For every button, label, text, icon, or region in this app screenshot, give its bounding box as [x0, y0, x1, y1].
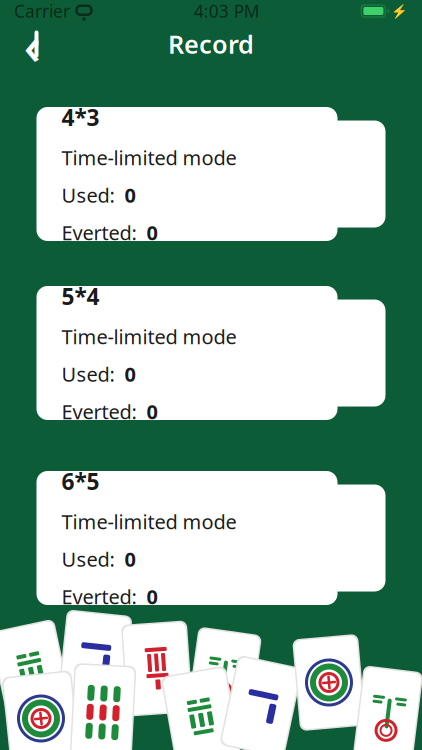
- staticText: Used:: [61, 361, 119, 387]
- staticText: Everted:: [61, 398, 141, 425]
- staticText: ⚡: [391, 3, 408, 19]
- staticText: Used:: [61, 182, 119, 208]
- staticText: 0: [141, 398, 157, 425]
- staticText: 0: [141, 583, 157, 610]
- button[interactable]: 4*3: [36, 107, 385, 241]
- staticText: Everted:: [61, 583, 141, 610]
- staticText: Time-limited mode: [61, 323, 236, 350]
- staticText: 4:03 PM: [194, 0, 260, 22]
- staticText: 0: [119, 182, 135, 208]
- button[interactable]: 5*4: [36, 286, 385, 420]
- staticText: 0: [141, 219, 157, 246]
- staticText: Time-limited mode: [61, 508, 236, 535]
- staticText: Time-limited mode: [61, 144, 236, 171]
- staticText: Carrier: [14, 0, 70, 22]
- staticText: ‹: [23, 9, 40, 79]
- button[interactable]: 6*5: [36, 471, 385, 605]
- staticText: Record: [168, 27, 254, 61]
- staticText: Everted:: [61, 219, 141, 246]
- staticText: 0: [119, 546, 135, 572]
- staticText: 6*5: [61, 466, 99, 496]
- staticText: 5*4: [61, 281, 99, 311]
- button[interactable]: Back: [10, 22, 54, 66]
- staticText: Used:: [61, 546, 119, 572]
- staticText: 0: [119, 361, 135, 387]
- staticText: 4*3: [61, 102, 99, 132]
